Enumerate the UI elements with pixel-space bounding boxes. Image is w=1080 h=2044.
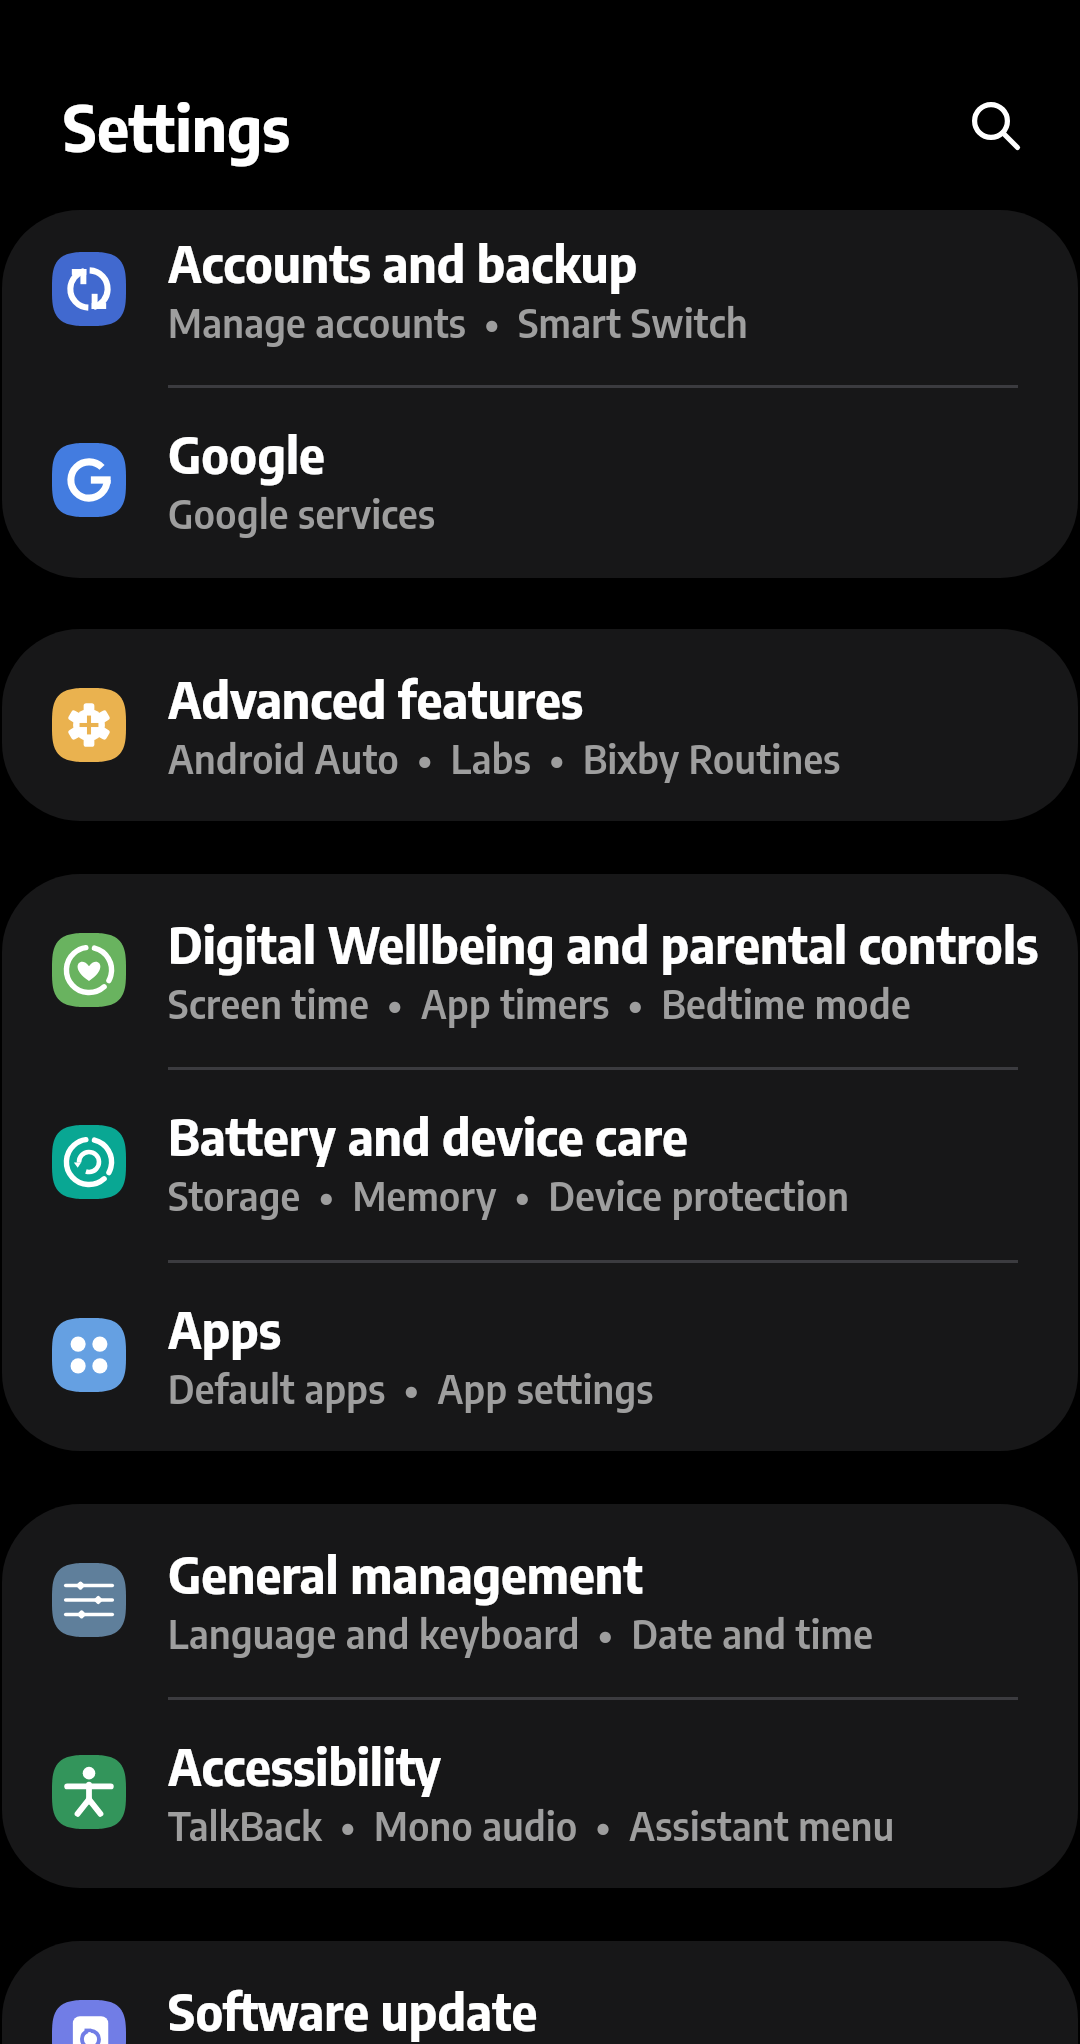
staticText: Software update: [168, 1979, 538, 2042]
staticText: Google: [168, 422, 325, 485]
button[interactable]: Advanced features: [2, 629, 1078, 821]
staticText: Battery and device care: [168, 1104, 688, 1167]
button[interactable]: General management: [2, 1504, 1078, 1696]
button[interactable]: Digital Wellbeing and parental controls: [2, 874, 1078, 1066]
staticText: Screen time • App timers • Bedtime mode: [168, 979, 911, 1028]
button[interactable]: Accessibility: [2, 1696, 1078, 1888]
staticText: Apps: [168, 1297, 281, 1360]
button[interactable]: Accounts and backup: [2, 193, 1078, 385]
staticText: Storage • Memory • Device protection: [168, 1171, 850, 1220]
staticText: Settings: [63, 88, 290, 165]
staticText: Digital Wellbeing and parental controls: [168, 912, 1039, 975]
staticText: Default apps • App settings: [168, 1364, 654, 1413]
button[interactable]: Battery and device care: [2, 1066, 1078, 1258]
staticText: Language and keyboard • Date and time: [168, 1609, 874, 1658]
staticText: TalkBack • Mono audio • Assistant menu: [168, 1801, 895, 1850]
button[interactable]: Software update: [2, 1941, 1078, 2044]
button[interactable]: Apps: [2, 1259, 1078, 1451]
staticText: Manage accounts • Smart Switch: [168, 298, 748, 347]
staticText: Advanced features: [168, 667, 584, 730]
button[interactable]: Search: [943, 73, 1039, 169]
staticText: Android Auto • Labs • Bixby Routines: [168, 734, 841, 783]
staticText: Google services: [168, 489, 436, 538]
staticText: Accounts and backup: [168, 231, 638, 294]
staticText: Accessibility: [168, 1734, 441, 1797]
button[interactable]: Google: [2, 384, 1078, 576]
staticText: General management: [168, 1542, 643, 1605]
